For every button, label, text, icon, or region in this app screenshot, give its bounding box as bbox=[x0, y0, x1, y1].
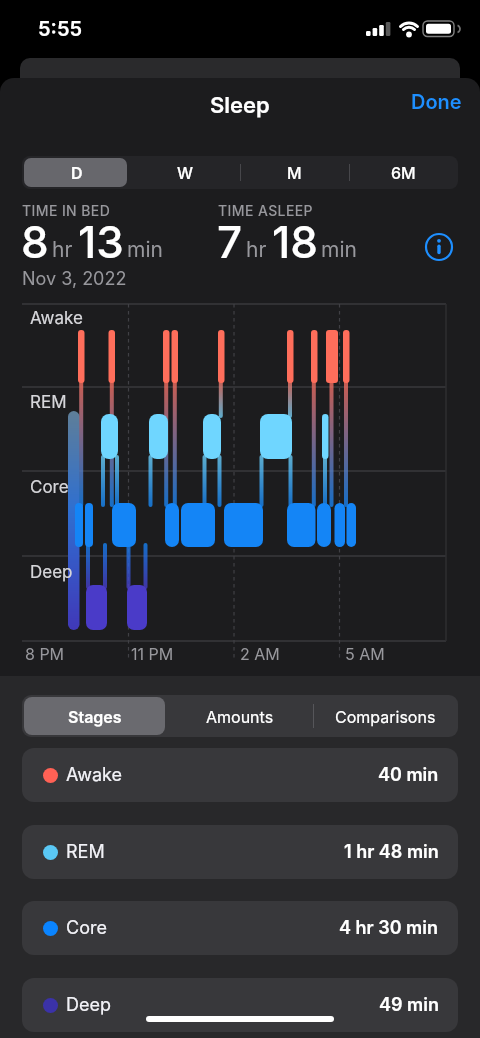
staticText: REM bbox=[30, 392, 67, 413]
staticText: Deep bbox=[30, 562, 73, 583]
staticText: D bbox=[71, 163, 83, 182]
button[interactable]: 6M bbox=[349, 156, 458, 189]
staticText: Core bbox=[30, 477, 69, 498]
staticText: 11 PM bbox=[131, 644, 174, 663]
staticText: 4 hr 30 min bbox=[339, 917, 439, 939]
staticText: hr bbox=[52, 237, 73, 262]
button[interactable]: Amounts bbox=[167, 695, 313, 737]
staticText: 8 PM bbox=[25, 644, 65, 663]
staticText: 7 bbox=[217, 215, 243, 268]
button[interactable]: Done bbox=[398, 84, 464, 120]
button[interactable]: D bbox=[22, 156, 131, 189]
staticText: Awake bbox=[66, 764, 123, 786]
staticText: 49 min bbox=[379, 994, 439, 1016]
button[interactable] bbox=[424, 232, 454, 262]
staticText: 6M bbox=[391, 163, 416, 182]
staticText: 1 hr 48 min bbox=[344, 841, 439, 863]
staticText: Comparisons bbox=[335, 707, 436, 726]
button[interactable]: Stages bbox=[22, 695, 168, 737]
staticText: W bbox=[177, 163, 194, 182]
button[interactable]: Deep bbox=[22, 978, 458, 1032]
staticText: Done bbox=[411, 90, 462, 114]
button[interactable]: REM bbox=[22, 825, 458, 879]
staticText: Stages bbox=[68, 707, 122, 726]
staticText: Deep bbox=[66, 994, 111, 1016]
staticText: 2 AM bbox=[240, 644, 280, 663]
staticText: min bbox=[127, 237, 163, 262]
staticText: Core bbox=[66, 917, 107, 939]
button[interactable]: M bbox=[240, 156, 349, 189]
staticText: Awake bbox=[30, 308, 83, 329]
button[interactable]: Comparisons bbox=[312, 695, 458, 737]
staticText: Nov 3, 2022 bbox=[22, 268, 127, 290]
staticText: Amounts bbox=[206, 707, 274, 726]
staticText: M bbox=[287, 163, 302, 182]
button[interactable]: Core bbox=[22, 901, 458, 955]
staticText: 5:55 bbox=[38, 17, 83, 41]
staticText: REM bbox=[66, 841, 105, 863]
staticText: hr bbox=[246, 237, 267, 262]
staticText: 5 AM bbox=[345, 644, 385, 663]
staticText: TIME IN BED bbox=[22, 202, 111, 219]
staticText: 13 bbox=[78, 215, 124, 268]
button[interactable]: W bbox=[131, 156, 240, 189]
staticText: Sleep bbox=[210, 92, 270, 119]
staticText: 40 min bbox=[378, 764, 439, 786]
staticText: TIME ASLEEP bbox=[218, 202, 313, 219]
button[interactable]: Awake bbox=[22, 748, 458, 802]
staticText: min bbox=[321, 237, 357, 262]
staticText: 18 bbox=[272, 215, 318, 268]
staticText: 8 bbox=[21, 215, 49, 268]
